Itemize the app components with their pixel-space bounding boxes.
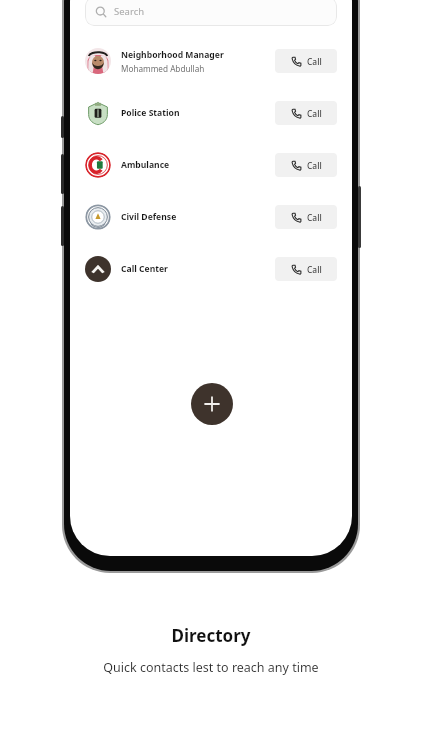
staticText: Call Center [121, 263, 168, 275]
button[interactable]: Ambulance [70, 152, 352, 178]
staticText: Civil Defense [121, 211, 177, 223]
button[interactable]: Call [275, 101, 337, 125]
button[interactable]: Call [275, 257, 337, 281]
button[interactable]: Search [85, 0, 337, 26]
staticText: Call [307, 56, 322, 67]
staticText: Call [307, 160, 322, 171]
button[interactable]: Add contact [191, 383, 233, 425]
staticText: Directory [171, 624, 251, 647]
button[interactable]: Call [275, 205, 337, 229]
staticText: Neighborhood Manager [121, 49, 224, 61]
button[interactable]: Neighborhood Manager [70, 48, 352, 74]
button[interactable]: Back [84, 0, 110, 14]
button[interactable]: Police Station [70, 100, 352, 126]
staticText: Call [307, 264, 322, 275]
staticText: Police Station [121, 107, 180, 119]
staticText: Quick contacts lest to reach any time [103, 659, 319, 676]
button[interactable]: Call [275, 49, 337, 73]
button[interactable]: Civil Defense [70, 204, 352, 230]
staticText: Call [307, 108, 322, 119]
button[interactable]: Call [275, 153, 337, 177]
staticText: Call [307, 212, 322, 223]
staticText: Mohammed Abdullah [121, 63, 205, 74]
staticText: Ambulance [121, 159, 170, 171]
staticText: Search [114, 5, 145, 18]
button[interactable]: Call Center [70, 256, 352, 282]
